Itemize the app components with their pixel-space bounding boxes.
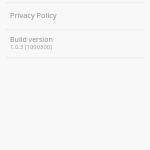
staticText: 1.0.3 (1000300) <box>10 43 52 51</box>
button[interactable]: Privacy Policy <box>0 4 150 29</box>
staticText: Build version <box>10 35 53 45</box>
staticText: Privacy Policy <box>10 10 57 20</box>
button[interactable]: Build version <box>0 31 150 57</box>
